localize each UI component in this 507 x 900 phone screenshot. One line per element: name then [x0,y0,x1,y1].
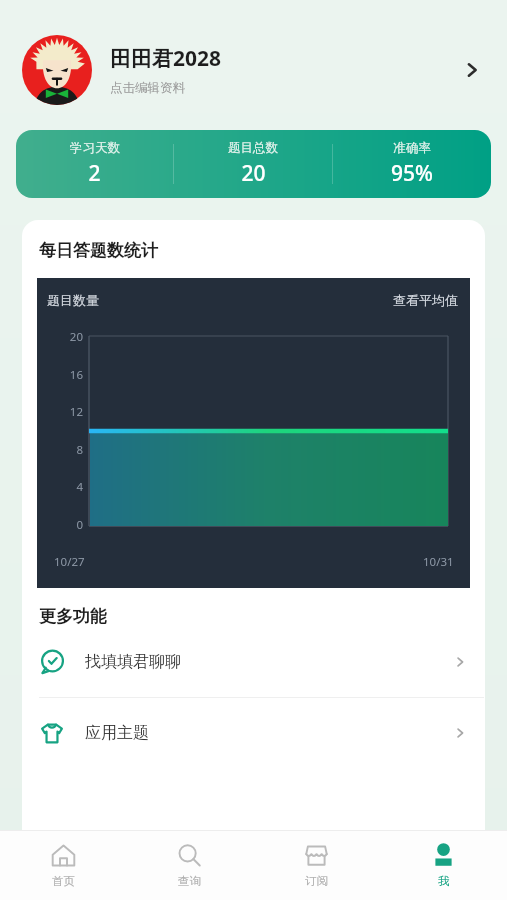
staticText: 2 [88,159,101,188]
staticText: 8 [76,442,83,458]
staticText: 学习天数 [70,140,120,156]
staticText: 我 [438,874,450,888]
staticText: 20 [241,159,266,188]
button[interactable]: Subscriptions [253,830,380,900]
staticText: 0 [76,517,83,533]
button[interactable]: Avatar [0,20,507,120]
button[interactable]: App theme [22,698,485,768]
staticText: 95% [391,159,433,188]
staticText: 20 [69,329,83,345]
staticText: 首页 [52,874,75,888]
button[interactable]: 学习天数 [16,130,173,198]
button[interactable]: Profile [380,830,507,900]
staticText: 田田君2028 [110,44,222,73]
staticText: 题目总数 [228,140,278,156]
button[interactable]: 查看平均值 [393,292,458,308]
staticText: 10/27 [54,554,85,570]
other: Avatar [22,35,92,105]
button[interactable]: Chat [22,627,485,697]
staticText: 4 [76,479,83,495]
other: Home [50,842,77,869]
button[interactable]: 题目总数 [174,130,332,198]
other: App theme [39,720,65,746]
staticText: 10/31 [423,554,454,570]
staticText: 每日答题数统计 [39,240,158,261]
staticText: 准确率 [393,140,431,156]
staticText: 点击编辑资料 [110,80,185,96]
button[interactable]: Search [126,830,253,900]
staticText: 更多功能 [39,606,107,627]
button[interactable]: Home [0,830,126,900]
other: Subscriptions [303,842,330,869]
other: Chat [39,649,65,675]
staticText: 题目数量 [47,292,99,308]
staticText: 16 [69,367,83,383]
staticText: 找填填君聊聊 [85,652,452,672]
staticText: 查询 [178,874,201,888]
staticText: 应用主题 [85,723,452,743]
staticText: 订阅 [305,874,328,888]
other: Profile [430,842,457,869]
button[interactable]: 准确率 [333,130,491,198]
other: Search [176,842,203,869]
staticText: 12 [69,404,83,420]
